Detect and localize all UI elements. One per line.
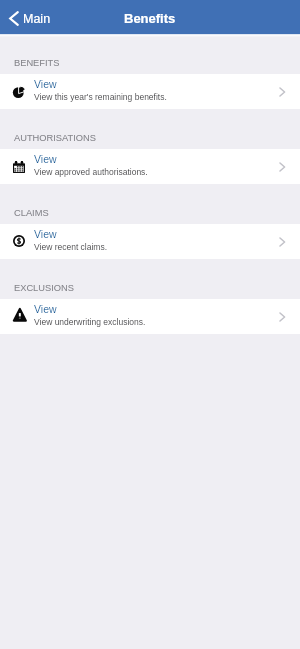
- staticText: View approved authorisations.: [34, 167, 148, 176]
- staticText: CLAIMS: [14, 208, 49, 218]
- staticText: BENEFITS: [14, 58, 60, 68]
- button[interactable]: View: [0, 224, 300, 259]
- button[interactable]: Main: [4, 7, 55, 28]
- staticText: Benefits: [124, 11, 176, 26]
- button[interactable]: View: [0, 149, 300, 184]
- staticText: View: [34, 78, 57, 90]
- staticText: View this year's remaining benefits.: [34, 92, 167, 101]
- staticText: View: [34, 153, 57, 165]
- staticText: View underwriting exclusions.: [34, 317, 146, 326]
- staticText: View: [34, 228, 57, 240]
- staticText: Main: [23, 12, 51, 26]
- staticText: View: [34, 303, 57, 315]
- staticText: View recent claims.: [34, 242, 108, 251]
- button[interactable]: View: [0, 299, 300, 334]
- button[interactable]: View: [0, 74, 300, 109]
- staticText: EXCLUSIONS: [14, 283, 74, 293]
- staticText: AUTHORISATIONS: [14, 133, 96, 143]
